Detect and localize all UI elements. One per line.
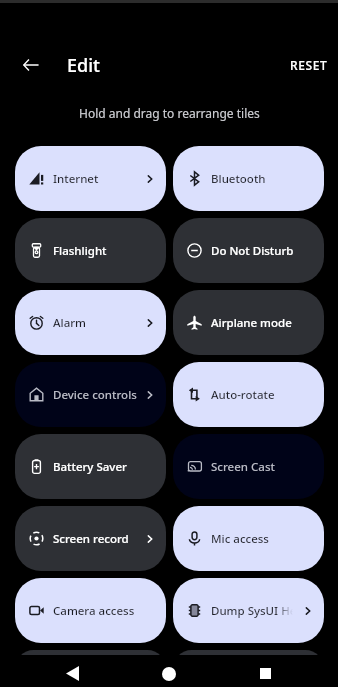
- staticText: Device controls: [53, 387, 137, 403]
- staticText: Airplane mode: [211, 315, 292, 331]
- button[interactable]: Recents: [250, 658, 281, 687]
- button[interactable]: Airplane mode: [173, 290, 324, 355]
- staticText: Dump SysUI Heap: [211, 603, 302, 619]
- button[interactable]: Alarm: [15, 290, 166, 355]
- button[interactable]: Dump SysUI Heap: [173, 578, 324, 643]
- staticText: Do Not Disturb: [211, 243, 294, 259]
- button[interactable]: Battery Saver: [15, 434, 166, 499]
- staticText: Battery Saver: [53, 459, 127, 475]
- button[interactable]: Screen Cast: [173, 434, 324, 499]
- staticText: Screen record: [53, 531, 129, 547]
- staticText: Hold and drag to rearrange tiles: [79, 105, 260, 121]
- button[interactable]: Mic access: [173, 506, 324, 571]
- staticText: Auto-rotate: [211, 387, 275, 403]
- button[interactable]: Back: [57, 658, 88, 687]
- staticText: Internet: [53, 171, 99, 187]
- button[interactable]: Flashlight: [15, 218, 166, 283]
- button[interactable]: [15, 650, 166, 687]
- staticText: Flashlight: [53, 243, 107, 259]
- button[interactable]: Home: [153, 658, 184, 687]
- button[interactable]: Bluetooth: [173, 146, 324, 211]
- staticText: Alarm: [53, 315, 86, 331]
- staticText: Bluetooth: [211, 171, 266, 187]
- button[interactable]: Auto-rotate: [173, 362, 324, 427]
- button[interactable]: Back: [16, 50, 46, 80]
- button[interactable]: [173, 650, 324, 687]
- button[interactable]: Device controls: [15, 362, 166, 427]
- button[interactable]: Screen record: [15, 506, 166, 571]
- staticText: RESET: [290, 57, 328, 73]
- staticText: Screen Cast: [211, 459, 275, 475]
- button[interactable]: RESET: [286, 51, 332, 79]
- staticText: Edit: [67, 53, 100, 78]
- staticText: Camera access: [53, 603, 135, 619]
- staticText: Mic access: [211, 531, 269, 547]
- button[interactable]: Camera access: [15, 578, 166, 643]
- button[interactable]: Do Not Disturb: [173, 218, 324, 283]
- button[interactable]: Internet: [15, 146, 166, 211]
